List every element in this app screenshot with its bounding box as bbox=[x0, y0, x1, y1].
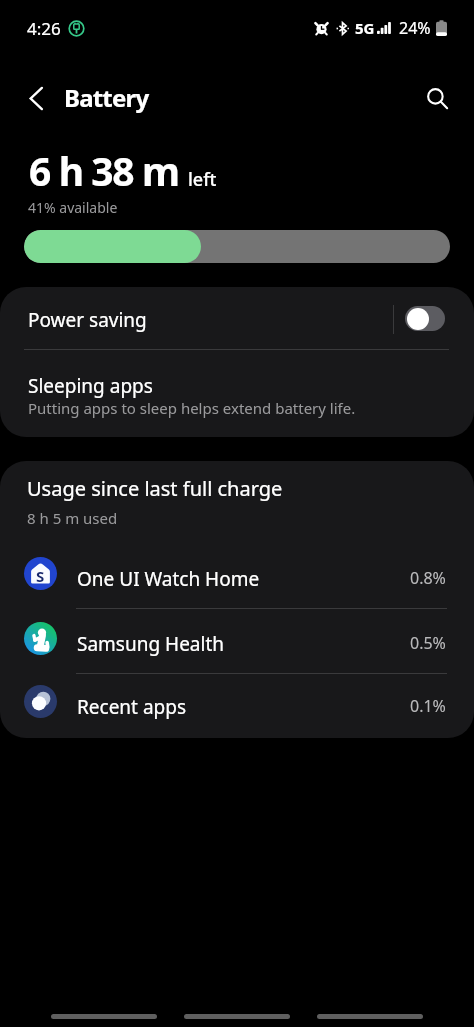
button[interactable]: Recent apps bbox=[0, 674, 474, 734]
staticText: Putting apps to sleep helps extend batte… bbox=[28, 398, 356, 418]
button[interactable]: S bbox=[0, 544, 474, 608]
button[interactable]: Back bbox=[317, 1014, 423, 1019]
staticText: 8 h 5 m used bbox=[27, 508, 118, 528]
staticText: Sleeping apps bbox=[28, 373, 153, 399]
staticText: Recent apps bbox=[77, 694, 410, 720]
staticText: 5G bbox=[355, 18, 375, 38]
staticText: 41% available bbox=[28, 198, 118, 217]
button[interactable]: Back bbox=[12, 74, 60, 122]
staticText: 6 h 38 m bbox=[29, 144, 179, 197]
button[interactable]: Power saving toggle bbox=[405, 306, 445, 331]
staticText: 0.5% bbox=[410, 632, 446, 654]
staticText: 0.8% bbox=[410, 567, 446, 589]
staticText: Usage since last full charge bbox=[27, 475, 283, 502]
staticText: Battery bbox=[64, 81, 149, 114]
button[interactable]: Search bbox=[413, 74, 461, 122]
staticText: 0.1% bbox=[410, 695, 446, 717]
staticText: S bbox=[36, 566, 45, 586]
staticText: left bbox=[188, 167, 217, 192]
button[interactable]: Power saving bbox=[0, 287, 474, 349]
button[interactable]: Sleeping apps bbox=[0, 350, 474, 430]
staticText: 4:26 bbox=[27, 17, 61, 40]
button[interactable]: Samsung Health bbox=[0, 609, 474, 673]
staticText: 24% bbox=[399, 17, 431, 39]
staticText: Samsung Health bbox=[77, 631, 410, 657]
button[interactable]: Recents bbox=[51, 1014, 157, 1019]
staticText: Power saving bbox=[28, 307, 393, 333]
staticText: One UI Watch Home bbox=[77, 566, 410, 592]
button[interactable]: Home bbox=[184, 1014, 290, 1019]
